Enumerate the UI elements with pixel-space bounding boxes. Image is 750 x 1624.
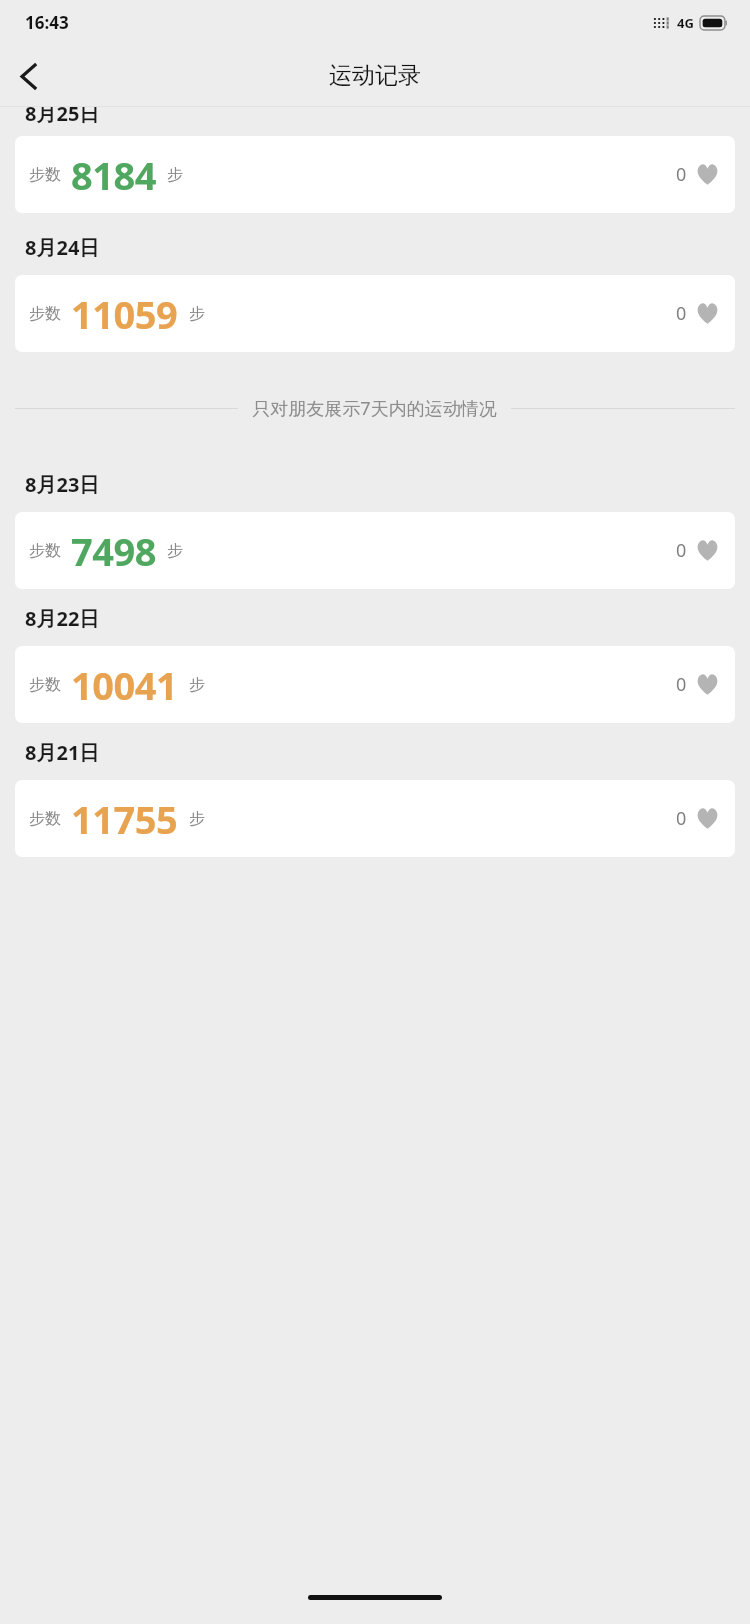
staticText: 4G [677,14,694,32]
button[interactable]: Like [676,301,719,326]
staticText: 8184 [71,149,156,201]
staticText: 11059 [71,288,178,340]
staticText: 0 [676,538,687,563]
staticText: 步 [189,809,205,829]
staticText: 7498 [71,525,156,577]
staticText: 16:43 [25,11,69,34]
button[interactable]: 步数 [15,512,735,589]
staticText: 步 [189,675,205,695]
staticText: 步 [167,165,183,185]
staticText: 步数 [29,541,61,561]
button[interactable]: 步数 [15,136,735,213]
button[interactable]: 步数 [15,780,735,857]
staticText: 8月22日 [25,605,100,632]
staticText: 步数 [29,165,61,185]
staticText: 步数 [29,809,61,829]
button[interactable]: Like [676,162,719,187]
staticText: 步 [167,541,183,561]
staticText: 8月23日 [25,471,100,498]
staticText: 10041 [71,659,178,711]
staticText: 8月25日 [25,107,100,126]
staticText: 步数 [29,675,61,695]
staticText: 0 [676,806,687,831]
staticText: 步 [189,304,205,324]
staticText: 只对朋友展示7天内的运动情况 [252,396,497,421]
button[interactable]: Like [676,672,719,697]
button[interactable]: Like [676,538,719,563]
button[interactable]: Back [0,48,56,104]
staticText: 运动记录 [329,61,421,90]
staticText: 0 [676,301,687,326]
button[interactable]: Like [676,806,719,831]
staticText: 8月24日 [25,234,100,261]
button[interactable]: 步数 [15,275,735,352]
button[interactable]: 步数 [15,646,735,723]
staticText: 步数 [29,304,61,324]
staticText: 11755 [71,793,178,845]
staticText: 0 [676,162,687,187]
staticText: 0 [676,672,687,697]
staticText: 8月21日 [25,739,100,766]
